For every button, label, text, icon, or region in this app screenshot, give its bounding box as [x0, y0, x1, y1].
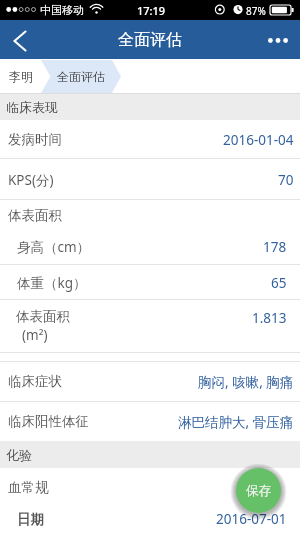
button[interactable]: 身高（cm） [0, 228, 300, 265]
button[interactable]: 李明 [0, 59, 41, 94]
button[interactable]: 临床症状 [0, 361, 300, 402]
staticText: 身高（cm） [17, 238, 91, 256]
button[interactable]: 日期 [0, 505, 300, 533]
button[interactable]: 全面评估 [41, 59, 121, 94]
staticText: 淋巴结肿大, 骨压痛 [178, 413, 294, 431]
staticText: 2016-07-01 [216, 510, 287, 528]
staticText: 体重（kg） [17, 274, 87, 292]
button[interactable]: 体表面积 [0, 200, 300, 228]
staticText: (m²) [22, 326, 48, 344]
button[interactable]: More options [258, 20, 300, 59]
staticText: 血常规 [8, 479, 49, 496]
staticText: 中国移动 [40, 3, 84, 17]
staticText: 发病时间 [8, 131, 62, 148]
staticText: 李明 [9, 69, 33, 84]
button[interactable]: 体表面积 [0, 300, 300, 353]
button[interactable]: 保存 [236, 468, 281, 513]
staticText: 体表面积 [8, 207, 62, 224]
staticText: 临床症状 [8, 373, 62, 390]
staticText: 临床表现 [6, 99, 58, 115]
staticText: 临床阳性体征 [8, 413, 89, 430]
staticText: 化验 [6, 447, 32, 463]
staticText: 178 [263, 238, 287, 256]
staticText: 70 [278, 171, 294, 189]
staticText: 全面评估 [118, 30, 182, 50]
button[interactable]: Back [0, 20, 40, 59]
staticText: 17:19 [137, 3, 166, 18]
staticText: 全面评估 [57, 69, 105, 84]
staticText: KPS(分) [8, 171, 54, 189]
button[interactable]: 体重（kg） [0, 265, 300, 300]
staticText: 日期 [17, 511, 44, 528]
staticText: 体表面积 [16, 308, 70, 325]
button[interactable]: KPS(分) [0, 159, 300, 200]
staticText: 胸闷, 咳嗽, 胸痛 [198, 373, 294, 391]
staticText: 保存 [246, 483, 271, 499]
staticText: 2016-01-04 [223, 131, 294, 149]
button[interactable]: 血常规 [0, 468, 300, 505]
button[interactable]: 发病时间 [0, 120, 300, 159]
button[interactable]: 临床阳性体征 [0, 402, 300, 441]
staticText: 1.813 [252, 309, 287, 327]
staticText: 87% [246, 4, 266, 18]
staticText: 65 [271, 274, 287, 292]
